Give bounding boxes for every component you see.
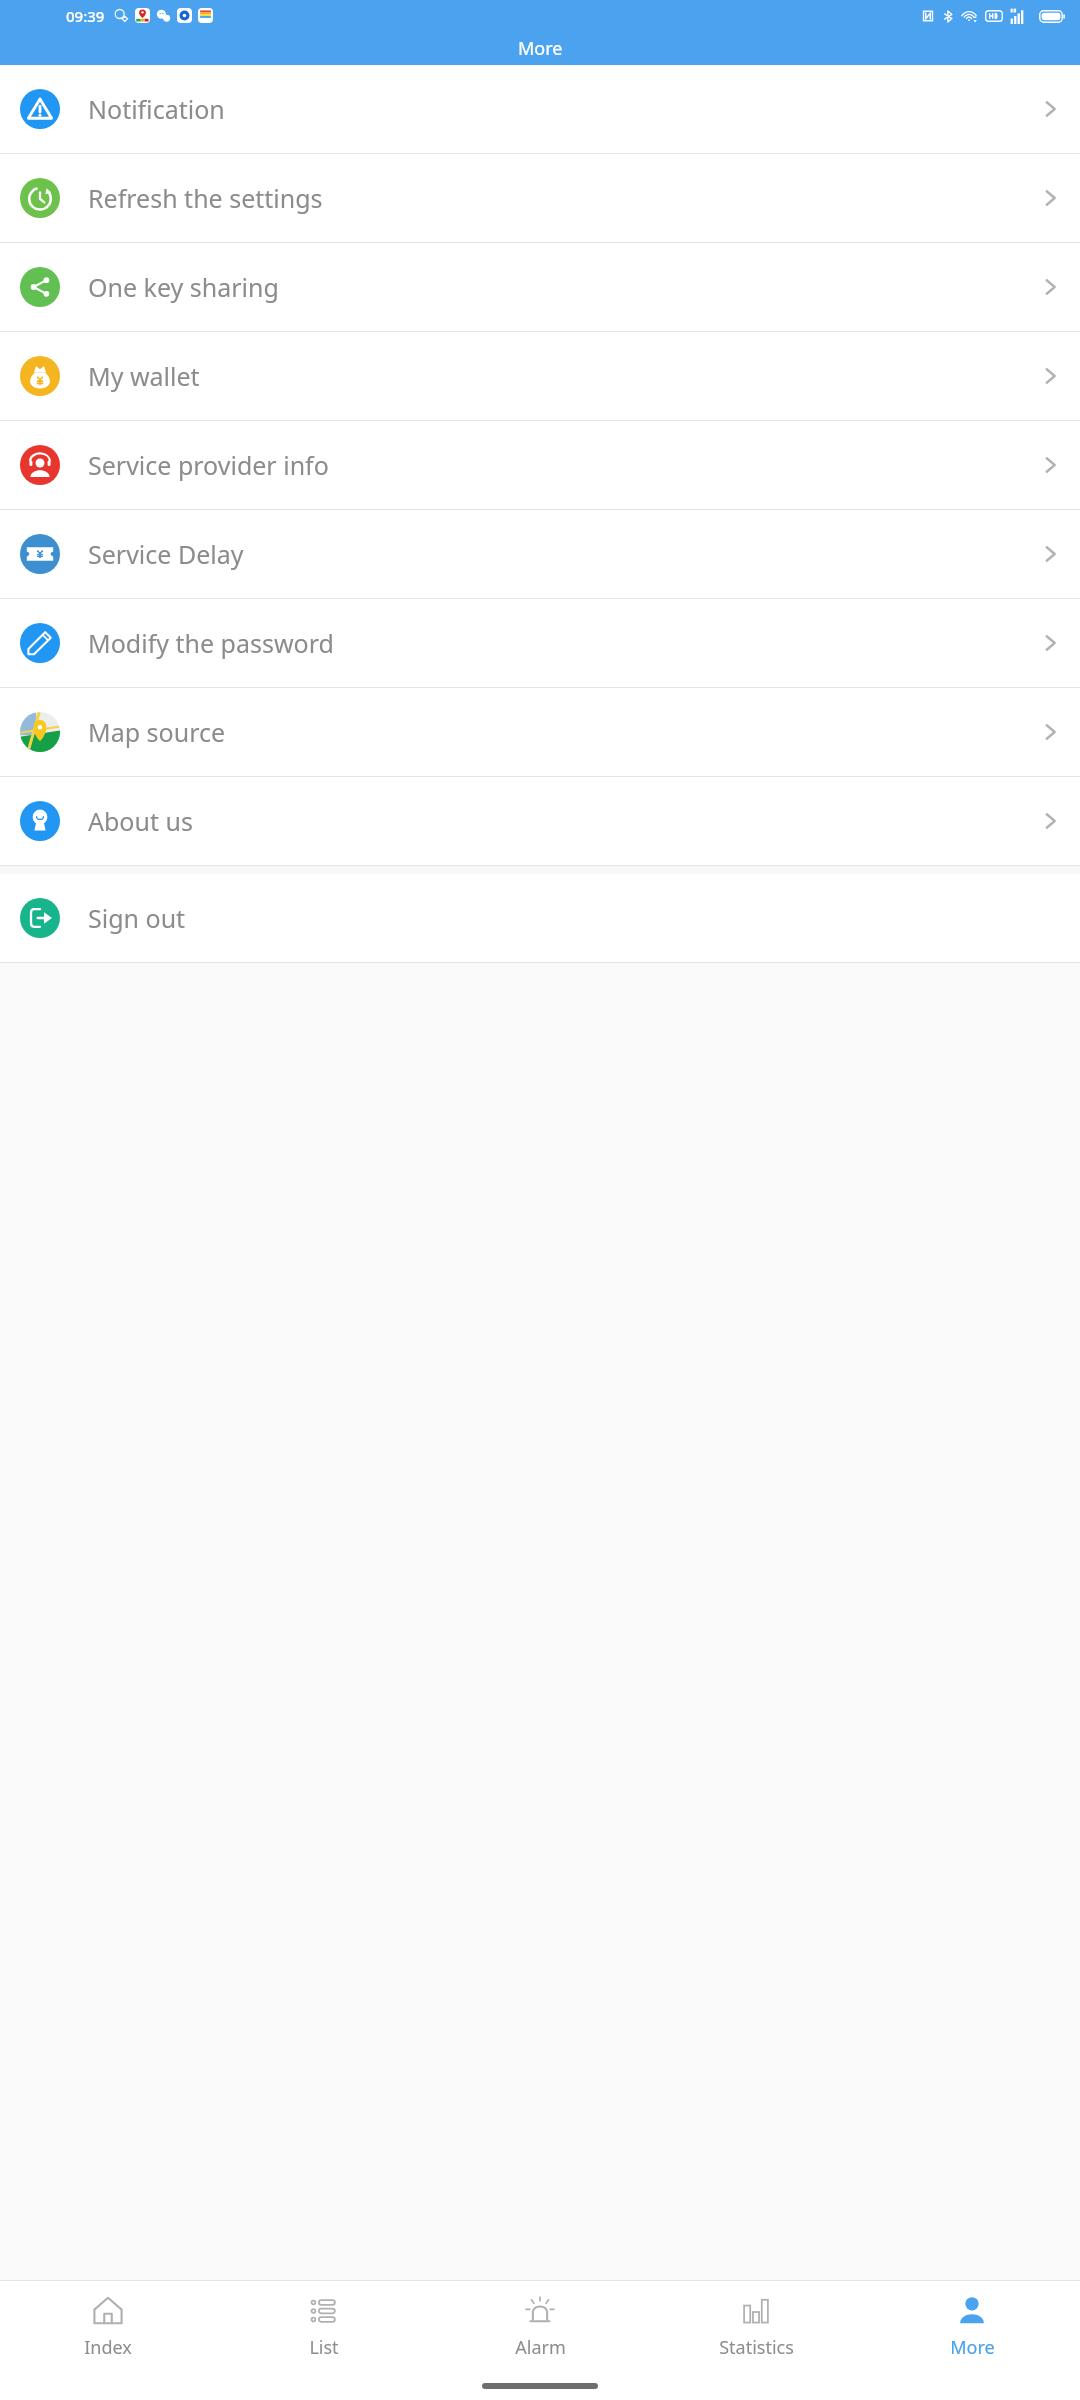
button[interactable]: Statistics bbox=[648, 2281, 864, 2372]
button[interactable]: About us bbox=[0, 777, 1080, 865]
button[interactable]: Index bbox=[0, 2281, 216, 2372]
button[interactable]: Modify the password bbox=[0, 599, 1080, 687]
staticText: Statistics bbox=[719, 2335, 794, 2360]
button[interactable]: Refresh the settings bbox=[0, 154, 1080, 242]
button[interactable]: Service Delay bbox=[0, 510, 1080, 598]
staticText: More bbox=[950, 2335, 995, 2360]
staticText: Service Delay bbox=[88, 537, 244, 571]
button[interactable]: Service provider info bbox=[0, 421, 1080, 509]
button[interactable]: List bbox=[216, 2281, 432, 2372]
staticText: Index bbox=[84, 2335, 132, 2360]
staticText: Service provider info bbox=[88, 448, 329, 482]
staticText: Map source bbox=[88, 715, 226, 749]
staticText: Modify the password bbox=[88, 626, 334, 660]
staticText: 09:39 bbox=[66, 6, 105, 26]
button[interactable]: Map source bbox=[0, 688, 1080, 776]
staticText: One key sharing bbox=[88, 270, 279, 304]
staticText: List bbox=[309, 2335, 339, 2360]
button[interactable]: One key sharing bbox=[0, 243, 1080, 331]
button[interactable]: Sign out bbox=[0, 874, 1080, 962]
staticText: Notification bbox=[88, 92, 225, 126]
staticText: Sign out bbox=[88, 901, 186, 935]
staticText: My wallet bbox=[88, 359, 200, 393]
staticText: More bbox=[518, 36, 563, 61]
staticText: About us bbox=[88, 804, 193, 838]
button[interactable]: Notification bbox=[0, 65, 1080, 153]
button[interactable]: More bbox=[864, 2281, 1080, 2372]
staticText: Refresh the settings bbox=[88, 181, 323, 215]
button[interactable]: My wallet bbox=[0, 332, 1080, 420]
button[interactable]: Alarm bbox=[432, 2281, 648, 2372]
staticText: Alarm bbox=[515, 2335, 566, 2360]
